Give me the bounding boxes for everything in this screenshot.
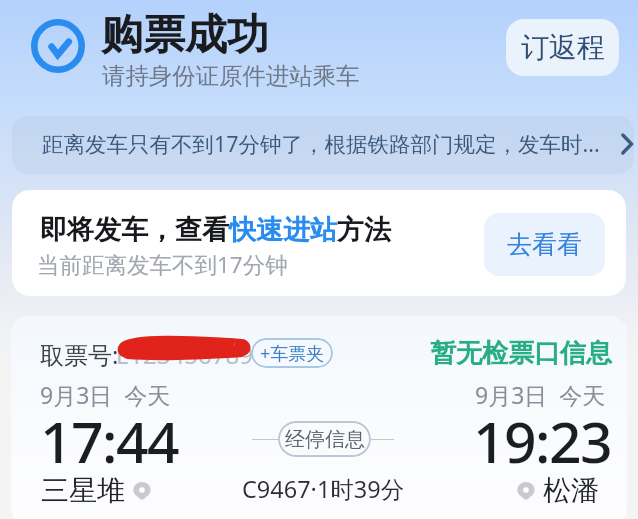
button[interactable]: +车票夹 [251, 338, 333, 368]
staticText: 即将发车，查看快速进站方法 [40, 213, 391, 247]
staticText: 暂无检票口信息 [430, 337, 612, 370]
staticText: 经停信息 [285, 427, 365, 452]
button[interactable]: 经停信息 [278, 421, 371, 457]
staticText: 取票号: [40, 338, 119, 371]
staticText: 当前距离发车不到17分钟 [37, 249, 288, 280]
staticText: 三星堆 [41, 473, 125, 508]
staticText: 去看看 [507, 229, 582, 260]
staticText: 9月3日 今天 [40, 379, 171, 410]
staticText: 19:23 [473, 402, 611, 480]
staticText: 17:44 [40, 402, 178, 480]
staticText: 松潘 [543, 473, 599, 508]
button[interactable]: 订返程 [506, 19, 619, 76]
staticText: E123456789 [116, 338, 253, 371]
other: 查看详情 [616, 135, 634, 153]
staticText: 9月3日 今天 [475, 379, 606, 410]
button[interactable]: 距离发车只有不到17分钟了，根据铁路部门规定，发车时... [12, 116, 634, 174]
staticText: C9467·1时39分 [242, 473, 405, 505]
button[interactable]: 去看看 [484, 213, 605, 276]
staticText: 距离发车只有不到17分钟了，根据铁路部门规定，发车时... [42, 129, 600, 158]
staticText: 订返程 [521, 30, 605, 65]
staticText: +车票夹 [260, 341, 325, 366]
staticText: 请持身份证原件进站乘车 [102, 61, 360, 90]
staticText: 购票成功 [101, 9, 269, 62]
